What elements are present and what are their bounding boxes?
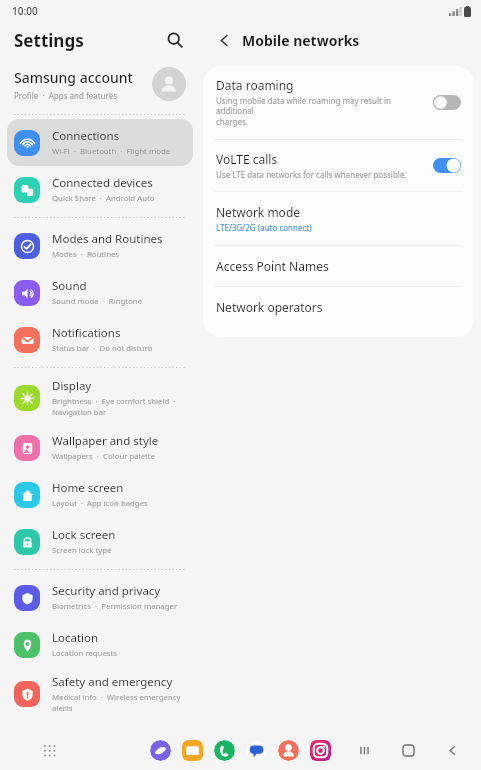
button[interactable]: All apps — [36, 737, 62, 763]
button[interactable]: Search — [160, 25, 190, 55]
staticText: Safety and emergency — [52, 674, 173, 690]
staticText: Wi-Fi · Bluetooth · Flight mode — [52, 146, 171, 157]
staticText: Modes and Routines — [52, 231, 163, 247]
staticText: Settings — [14, 29, 84, 52]
staticText: Status bar · Do not disturb — [52, 343, 153, 354]
button[interactable]: messages — [246, 740, 267, 761]
button[interactable]: instagram — [310, 740, 331, 761]
staticText: Connected devices — [52, 175, 153, 191]
button[interactable]: Access Point Names — [203, 246, 474, 286]
button[interactable]: Connections — [7, 119, 193, 166]
staticText: alerts — [52, 703, 73, 714]
staticText: Wallpapers · Colour palette — [52, 451, 156, 462]
staticText: Connections — [52, 128, 120, 144]
staticText: Notifications — [52, 325, 121, 341]
staticText: Sound — [52, 278, 87, 294]
staticText: Biometrics · Permission manager — [52, 601, 178, 612]
button[interactable]: Samsung account — [0, 58, 200, 110]
staticText: Use LTE data networks for calls whenever… — [216, 169, 407, 180]
staticText: Profile · Apps and features — [14, 90, 118, 101]
staticText: LTE/3G/2G (auto connect) — [216, 222, 312, 233]
button[interactable]: Back — [210, 26, 238, 54]
button[interactable]: Home — [397, 739, 419, 761]
staticText: Network mode — [216, 204, 301, 220]
button[interactable]: Data roaming — [203, 66, 474, 139]
button[interactable]: Wallpaper and style — [7, 424, 193, 471]
staticText: Brightness · Eye comfort shield · — [52, 396, 176, 407]
staticText: Samsung account — [14, 68, 133, 87]
button[interactable]: Location — [7, 621, 193, 668]
staticText: Wallpaper and style — [52, 433, 159, 449]
staticText: Location — [52, 630, 99, 646]
button[interactable]: Display — [7, 372, 193, 424]
staticText: Sound mode · Ringtone — [52, 296, 143, 307]
button[interactable]: Safety and emergency — [7, 668, 193, 720]
staticText: Screen lock type — [52, 545, 112, 556]
staticText: Security and privacy — [52, 583, 161, 599]
staticText: Network operators — [216, 299, 323, 315]
staticText: Using mobile data while roaming may resu… — [216, 95, 425, 128]
button[interactable]: VoLTE calls — [203, 140, 474, 191]
button[interactable]: Network operators — [203, 287, 474, 327]
button[interactable]: internet — [150, 740, 171, 761]
button[interactable]: Notifications — [7, 316, 193, 363]
staticText: Layout · App icon badges — [52, 498, 148, 509]
button[interactable]: Connected devices — [7, 166, 193, 213]
staticText: Navigation bar — [52, 407, 107, 418]
button[interactable]: Off — [433, 95, 461, 110]
staticText: Mobile networks — [242, 31, 360, 50]
staticText: Home screen — [52, 480, 124, 496]
button[interactable]: Lock screen — [7, 518, 193, 565]
button[interactable]: Network mode — [203, 192, 474, 245]
staticText: 10:00 — [12, 4, 38, 18]
staticText: Medical info · Wireless emergency — [52, 692, 181, 703]
button[interactable]: On — [433, 158, 461, 173]
button[interactable]: phone — [214, 740, 235, 761]
staticText: Data roaming — [216, 77, 294, 93]
button[interactable]: Modes and Routines — [7, 222, 193, 269]
button[interactable]: Sound — [7, 269, 193, 316]
staticText: Lock screen — [52, 527, 116, 543]
button[interactable]: Security and privacy — [7, 574, 193, 621]
button[interactable]: myfiles — [182, 740, 203, 761]
button[interactable]: Recents — [353, 739, 375, 761]
button[interactable]: contacts — [278, 740, 299, 761]
staticText: VoLTE calls — [216, 151, 278, 167]
staticText: Display — [52, 378, 92, 394]
button[interactable]: Back — [441, 739, 463, 761]
staticText: Access Point Names — [216, 258, 329, 274]
button[interactable]: Home screen — [7, 471, 193, 518]
staticText: Quick Share · Android Auto — [52, 193, 155, 204]
staticText: Location requests — [52, 648, 118, 659]
staticText: Modes · Routines — [52, 249, 120, 260]
